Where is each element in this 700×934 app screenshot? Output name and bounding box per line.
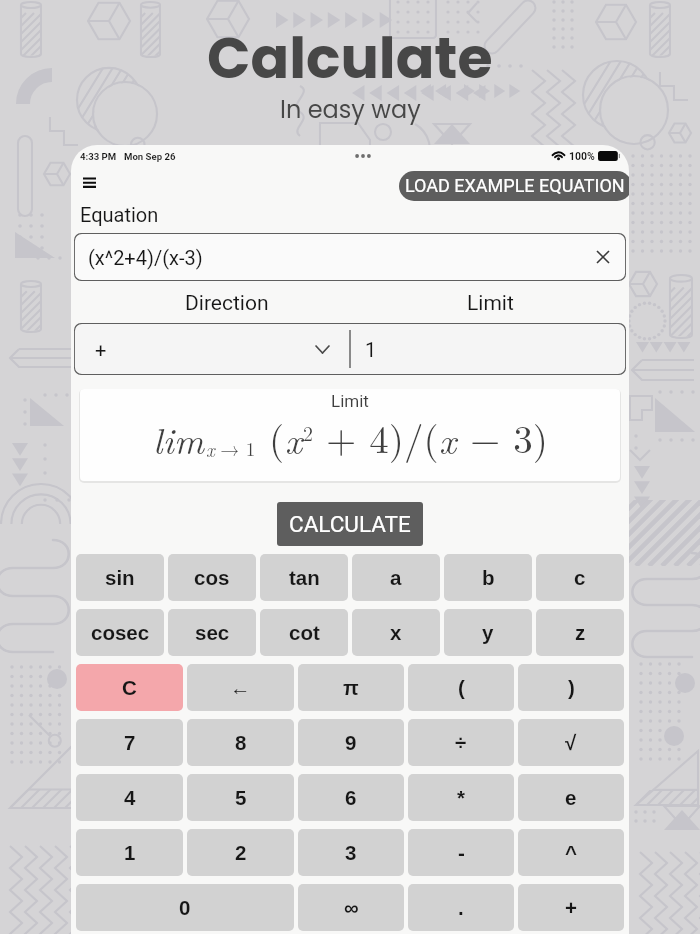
- staticText: LOAD EXAMPLE EQUATION: [405, 175, 625, 196]
- staticText: (x^2+4)/(x-3): [88, 246, 203, 269]
- staticText: + 4)/(: [313, 409, 439, 464]
- staticText: − 3): [457, 409, 548, 464]
- button[interactable]: CALCULATE: [277, 502, 423, 546]
- button[interactable]: tan: [260, 554, 348, 601]
- staticText: .: [458, 896, 464, 919]
- staticText: +: [95, 338, 107, 361]
- button[interactable]: +: [74, 323, 349, 375]
- button[interactable]: 4: [76, 774, 183, 821]
- button[interactable]: Clear: [592, 246, 614, 268]
- button[interactable]: 5: [187, 774, 294, 821]
- staticText: 8: [235, 731, 247, 754]
- button[interactable]: +: [518, 884, 624, 931]
- staticText: √: [565, 731, 577, 754]
- staticText: 2: [235, 841, 247, 864]
- staticText: Calculate: [207, 18, 493, 98]
- staticText: e: [565, 786, 577, 809]
- button[interactable]: -: [408, 829, 514, 876]
- staticText: ^: [565, 841, 577, 864]
- button[interactable]: ∞: [298, 884, 404, 931]
- staticText: x: [285, 412, 303, 464]
- button[interactable]: cos: [168, 554, 256, 601]
- button[interactable]: 2: [187, 829, 294, 876]
- staticText: Limit: [467, 291, 514, 316]
- staticText: C: [122, 676, 137, 699]
- button[interactable]: ): [518, 664, 624, 711]
- staticText: x: [206, 436, 215, 463]
- button[interactable]: Menu: [79, 172, 107, 200]
- staticText: 0: [179, 896, 191, 919]
- staticText: 2: [303, 418, 313, 446]
- button[interactable]: C: [76, 664, 183, 711]
- staticText: b: [482, 566, 495, 589]
- staticText: sin: [105, 566, 135, 589]
- button[interactable]: .: [408, 884, 514, 931]
- button[interactable]: e: [518, 774, 624, 821]
- staticText: cosec: [91, 621, 150, 644]
- staticText: a: [390, 566, 402, 589]
- staticText: cot: [289, 621, 320, 644]
- staticText: 7: [124, 731, 136, 754]
- button[interactable]: (: [408, 664, 514, 711]
- button[interactable]: 6: [298, 774, 404, 821]
- button[interactable]: √: [518, 719, 624, 766]
- button[interactable]: x: [352, 609, 440, 656]
- staticText: → 1: [214, 435, 256, 462]
- button[interactable]: 8: [187, 719, 294, 766]
- staticText: ): [568, 676, 575, 699]
- staticText: tan: [289, 566, 320, 589]
- staticText: x: [390, 621, 402, 644]
- staticText: 5: [235, 786, 247, 809]
- staticText: -: [458, 841, 465, 864]
- staticText: cos: [194, 566, 230, 589]
- button[interactable]: b: [444, 554, 532, 601]
- staticText: Equation: [80, 203, 159, 226]
- staticText: lim: [153, 412, 205, 464]
- button[interactable]: LOAD EXAMPLE EQUATION: [399, 171, 629, 201]
- staticText: ÷: [455, 731, 467, 754]
- button[interactable]: 0: [76, 884, 294, 931]
- staticText: ∞: [344, 896, 359, 919]
- staticText: In easy way: [280, 93, 421, 127]
- button[interactable]: ←: [187, 664, 294, 711]
- button[interactable]: cot: [260, 609, 348, 656]
- staticText: 4: [124, 786, 136, 809]
- button[interactable]: y: [444, 609, 532, 656]
- button[interactable]: ÷: [408, 719, 514, 766]
- button[interactable]: sin: [76, 554, 164, 601]
- button[interactable]: π: [298, 664, 404, 711]
- staticText: CALCULATE: [289, 511, 411, 537]
- button[interactable]: 9: [298, 719, 404, 766]
- staticText: c: [574, 566, 586, 589]
- button[interactable]: z: [536, 609, 624, 656]
- button[interactable]: c: [536, 554, 624, 601]
- staticText: (: [256, 409, 285, 464]
- button[interactable]: ^: [518, 829, 624, 876]
- staticText: 1: [124, 841, 136, 864]
- staticText: (: [458, 676, 465, 699]
- button[interactable]: 1: [351, 323, 626, 375]
- button[interactable]: sec: [168, 609, 256, 656]
- staticText: z: [575, 621, 586, 644]
- staticText: x: [439, 412, 457, 464]
- button[interactable]: *: [408, 774, 514, 821]
- staticText: 9: [345, 731, 357, 754]
- staticText: Limit: [331, 391, 369, 411]
- staticText: 3: [345, 841, 357, 864]
- staticText: 100%: [569, 150, 595, 162]
- staticText: Direction: [185, 291, 269, 316]
- staticText: 1: [365, 338, 377, 361]
- button[interactable]: (x^2+4)/(x-3): [74, 233, 626, 281]
- staticText: Mon Sep 26: [124, 151, 176, 162]
- button[interactable]: 3: [298, 829, 404, 876]
- staticText: 4:33 PM: [80, 151, 117, 162]
- staticText: π: [343, 676, 359, 699]
- button[interactable]: 7: [76, 719, 183, 766]
- button[interactable]: cosec: [76, 609, 164, 656]
- staticText: y: [482, 621, 494, 644]
- staticText: 6: [345, 786, 357, 809]
- staticText: +: [565, 896, 577, 919]
- staticText: ←: [230, 676, 251, 699]
- button[interactable]: 1: [76, 829, 183, 876]
- button[interactable]: a: [352, 554, 440, 601]
